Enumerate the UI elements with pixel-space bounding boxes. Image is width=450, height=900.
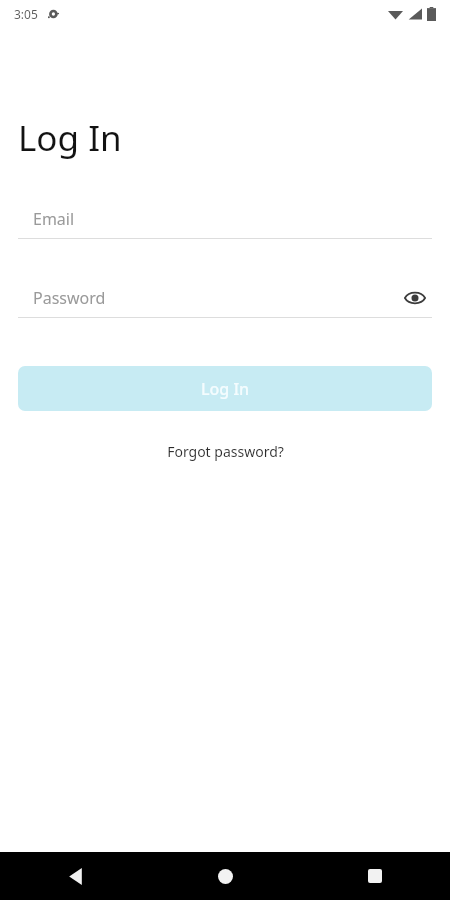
- staticText: 3:05: [14, 6, 38, 22]
- staticText: Log In: [201, 378, 250, 400]
- button[interactable]: Home: [150, 852, 300, 900]
- staticText: Forgot password?: [167, 442, 284, 461]
- button[interactable]: Back: [0, 852, 150, 900]
- staticText: Password: [33, 287, 106, 309]
- button[interactable]: Log In: [18, 366, 432, 411]
- button[interactable]: Recent apps: [300, 852, 450, 900]
- staticText: Email: [33, 208, 75, 230]
- button[interactable]: Show password: [398, 281, 432, 315]
- button[interactable]: Password: [18, 279, 432, 317]
- staticText: Log In: [18, 114, 122, 162]
- button[interactable]: Email: [18, 200, 432, 239]
- button[interactable]: Forgot password?: [157, 436, 294, 467]
